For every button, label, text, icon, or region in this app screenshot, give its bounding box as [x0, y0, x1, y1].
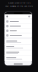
staticText: Now available on the App Store	[5, 5, 33, 7]
staticText: Claude Mobile for iOS	[7, 1, 30, 4]
